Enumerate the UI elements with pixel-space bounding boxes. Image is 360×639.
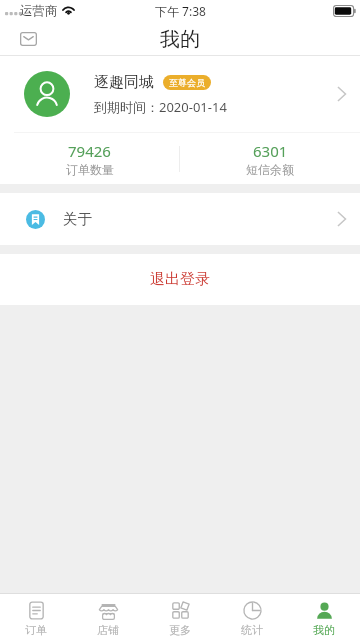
- staticText: 更多: [169, 623, 191, 637]
- button[interactable]: 订单: [0, 594, 72, 639]
- button[interactable]: 店铺: [72, 594, 144, 639]
- staticText: 6301: [253, 141, 288, 161]
- staticText: 我的: [313, 623, 335, 637]
- staticText: 订单: [25, 623, 47, 637]
- staticText: 到期时间：2020-01-14: [94, 98, 227, 116]
- staticText: 店铺: [97, 623, 119, 637]
- button[interactable]: 统计: [216, 594, 288, 639]
- staticText: 下午 7:38: [155, 3, 206, 19]
- staticText: 退出登录: [150, 270, 210, 289]
- staticText: 逐趣同城: [94, 73, 154, 92]
- button[interactable]: 消息: [12, 22, 44, 56]
- staticText: 至尊会员: [169, 77, 205, 88]
- staticText: 关于: [63, 210, 92, 228]
- button[interactable]: 逐趣同城: [0, 56, 360, 132]
- button[interactable]: 更多: [144, 594, 216, 639]
- staticText: 我的: [160, 27, 200, 52]
- staticText: 订单数量: [66, 162, 114, 177]
- staticText: 运营商: [20, 3, 58, 19]
- button[interactable]: 6301: [180, 133, 360, 184]
- staticText: 79426: [68, 141, 111, 161]
- button[interactable]: 退出登录: [0, 254, 360, 305]
- button[interactable]: 79426: [0, 133, 179, 184]
- button[interactable]: 我的: [288, 594, 360, 639]
- staticText: 统计: [241, 623, 263, 637]
- staticText: 短信余额: [246, 162, 294, 177]
- button[interactable]: 关于: [0, 193, 360, 245]
